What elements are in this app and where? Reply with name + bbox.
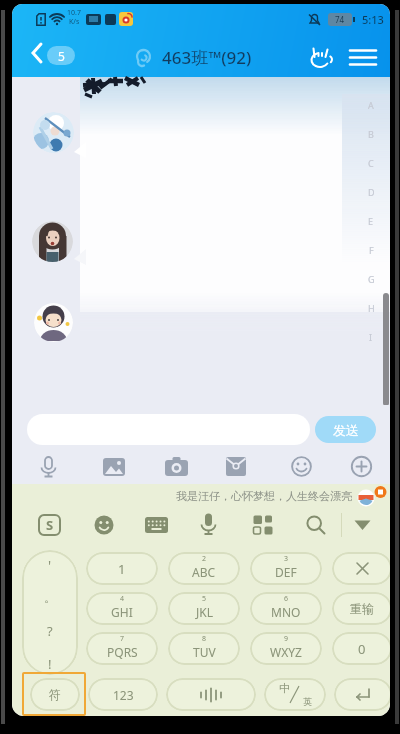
staticText: 4	[120, 594, 125, 604]
staticText: 英	[303, 696, 312, 707]
button[interactable]	[306, 515, 326, 535]
button[interactable]	[39, 456, 58, 478]
button[interactable]: 中	[264, 678, 326, 711]
staticText: 重输	[350, 601, 374, 616]
staticText: G	[368, 273, 375, 285]
button[interactable]: 5	[47, 46, 75, 65]
staticText: ?	[47, 622, 53, 640]
button[interactable]	[34, 303, 73, 342]
staticText: 463班™(92)	[162, 46, 252, 69]
button[interactable]	[27, 414, 310, 445]
button[interactable]	[165, 457, 188, 476]
staticText: 123	[113, 687, 134, 703]
staticText: K/s	[69, 17, 80, 27]
button[interactable]	[354, 520, 371, 531]
button[interactable]: 发送	[315, 416, 376, 443]
staticText: 2	[202, 554, 207, 564]
staticText: 符	[49, 687, 61, 702]
button[interactable]	[166, 678, 256, 711]
staticText: 10.7	[67, 8, 81, 18]
button[interactable]: 9	[250, 632, 322, 665]
staticText: TUV	[193, 644, 216, 660]
button[interactable]	[253, 515, 273, 535]
staticText: F	[369, 244, 374, 256]
button[interactable]	[103, 458, 125, 476]
button[interactable]: 1	[86, 552, 158, 585]
button[interactable]: 8	[168, 632, 240, 665]
button[interactable]: 5	[168, 592, 240, 625]
staticText: 74	[335, 14, 345, 25]
staticText: MNO	[271, 604, 301, 620]
button[interactable]	[22, 550, 78, 675]
button[interactable]: 符	[30, 678, 80, 711]
staticText: 中	[279, 681, 290, 695]
staticText: !	[48, 655, 52, 673]
staticText: 5:13	[362, 12, 384, 27]
button[interactable]: 123	[88, 678, 158, 711]
button[interactable]	[351, 456, 372, 477]
staticText: GHI	[111, 604, 133, 620]
staticText: 5	[202, 594, 207, 604]
staticText: B	[368, 128, 374, 140]
staticText: I	[369, 331, 373, 343]
button[interactable]: 重输	[332, 592, 390, 625]
button[interactable]: 6	[250, 592, 322, 625]
staticText: ABC	[192, 564, 216, 580]
button[interactable]	[33, 112, 74, 153]
staticText: 1	[118, 560, 126, 578]
button[interactable]: S	[38, 514, 61, 536]
staticText: WXYZ	[270, 644, 302, 660]
button[interactable]	[332, 552, 390, 585]
button[interactable]: 7	[86, 632, 158, 665]
staticText: 3	[284, 554, 289, 564]
button[interactable]: 4	[86, 592, 158, 625]
button[interactable]	[32, 221, 73, 262]
staticText: E	[368, 215, 374, 227]
button[interactable]	[30, 42, 44, 64]
staticText: C	[368, 157, 374, 169]
staticText: D	[368, 186, 375, 198]
staticText: 8	[202, 634, 207, 644]
staticText: '	[48, 556, 52, 575]
button[interactable]	[145, 517, 168, 533]
staticText: 。	[44, 590, 56, 605]
button[interactable]: 3	[250, 552, 322, 585]
button[interactable]	[291, 456, 312, 477]
button[interactable]	[334, 678, 390, 711]
staticText: A	[368, 99, 374, 111]
staticText: PQRS	[107, 644, 138, 660]
button[interactable]: 2	[168, 552, 240, 585]
button[interactable]: 0	[332, 632, 390, 665]
staticText: 发送	[333, 422, 359, 438]
staticText: DEF	[275, 564, 297, 580]
staticText: 6	[284, 594, 289, 604]
button[interactable]	[226, 457, 246, 476]
button[interactable]	[309, 46, 333, 69]
staticText: 7	[120, 634, 125, 644]
button[interactable]	[350, 49, 376, 66]
staticText: 我是汪仔，心怀梦想，人生终会漂亮	[176, 489, 352, 503]
staticText: 5	[58, 48, 65, 64]
staticText: 9	[284, 634, 289, 644]
staticText: S	[46, 516, 54, 534]
button[interactable]	[94, 515, 114, 535]
button[interactable]	[200, 513, 217, 536]
staticText: H	[368, 302, 375, 314]
staticText: JKL	[196, 604, 213, 620]
staticText: 0	[358, 640, 366, 658]
